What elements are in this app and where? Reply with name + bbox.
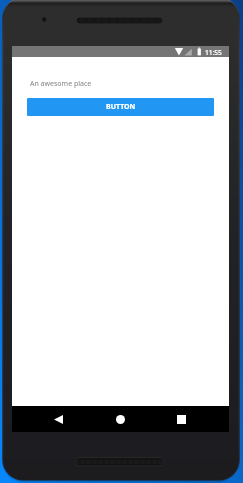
button[interactable]: BUTTON <box>27 98 214 116</box>
staticText: BUTTON <box>106 102 136 112</box>
button[interactable]: Back <box>38 406 78 432</box>
staticText: An awesome place <box>30 79 92 89</box>
staticText: 11:55 <box>205 48 222 57</box>
button[interactable]: Recent apps <box>161 406 201 432</box>
button[interactable]: Home <box>100 406 140 432</box>
